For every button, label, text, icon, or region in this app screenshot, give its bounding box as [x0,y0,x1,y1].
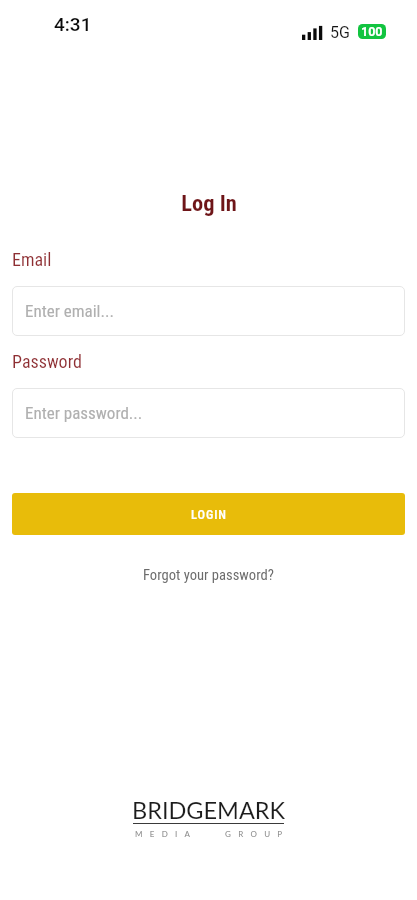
button[interactable]: Enter email... [12,286,405,336]
staticText: 4:31 [54,13,92,35]
other: Signal strength [302,25,323,40]
button[interactable]: Forgot your password? [133,562,284,587]
staticText: Forgot your password? [143,566,274,583]
staticText: LOGIN [191,507,227,522]
staticText: Enter email... [25,301,114,321]
staticText: 5G [330,23,350,42]
button[interactable]: LOGIN [12,493,405,535]
staticText: Password [12,351,82,372]
staticText: Enter password... [25,403,143,423]
staticText: Log In [181,190,237,216]
staticText: 100 [361,24,383,39]
staticText: MEDIA GROUP [135,829,290,839]
staticText: BRIDGEMARK [132,796,286,824]
button[interactable]: Enter password... [12,388,405,438]
staticText: Email [12,249,52,270]
